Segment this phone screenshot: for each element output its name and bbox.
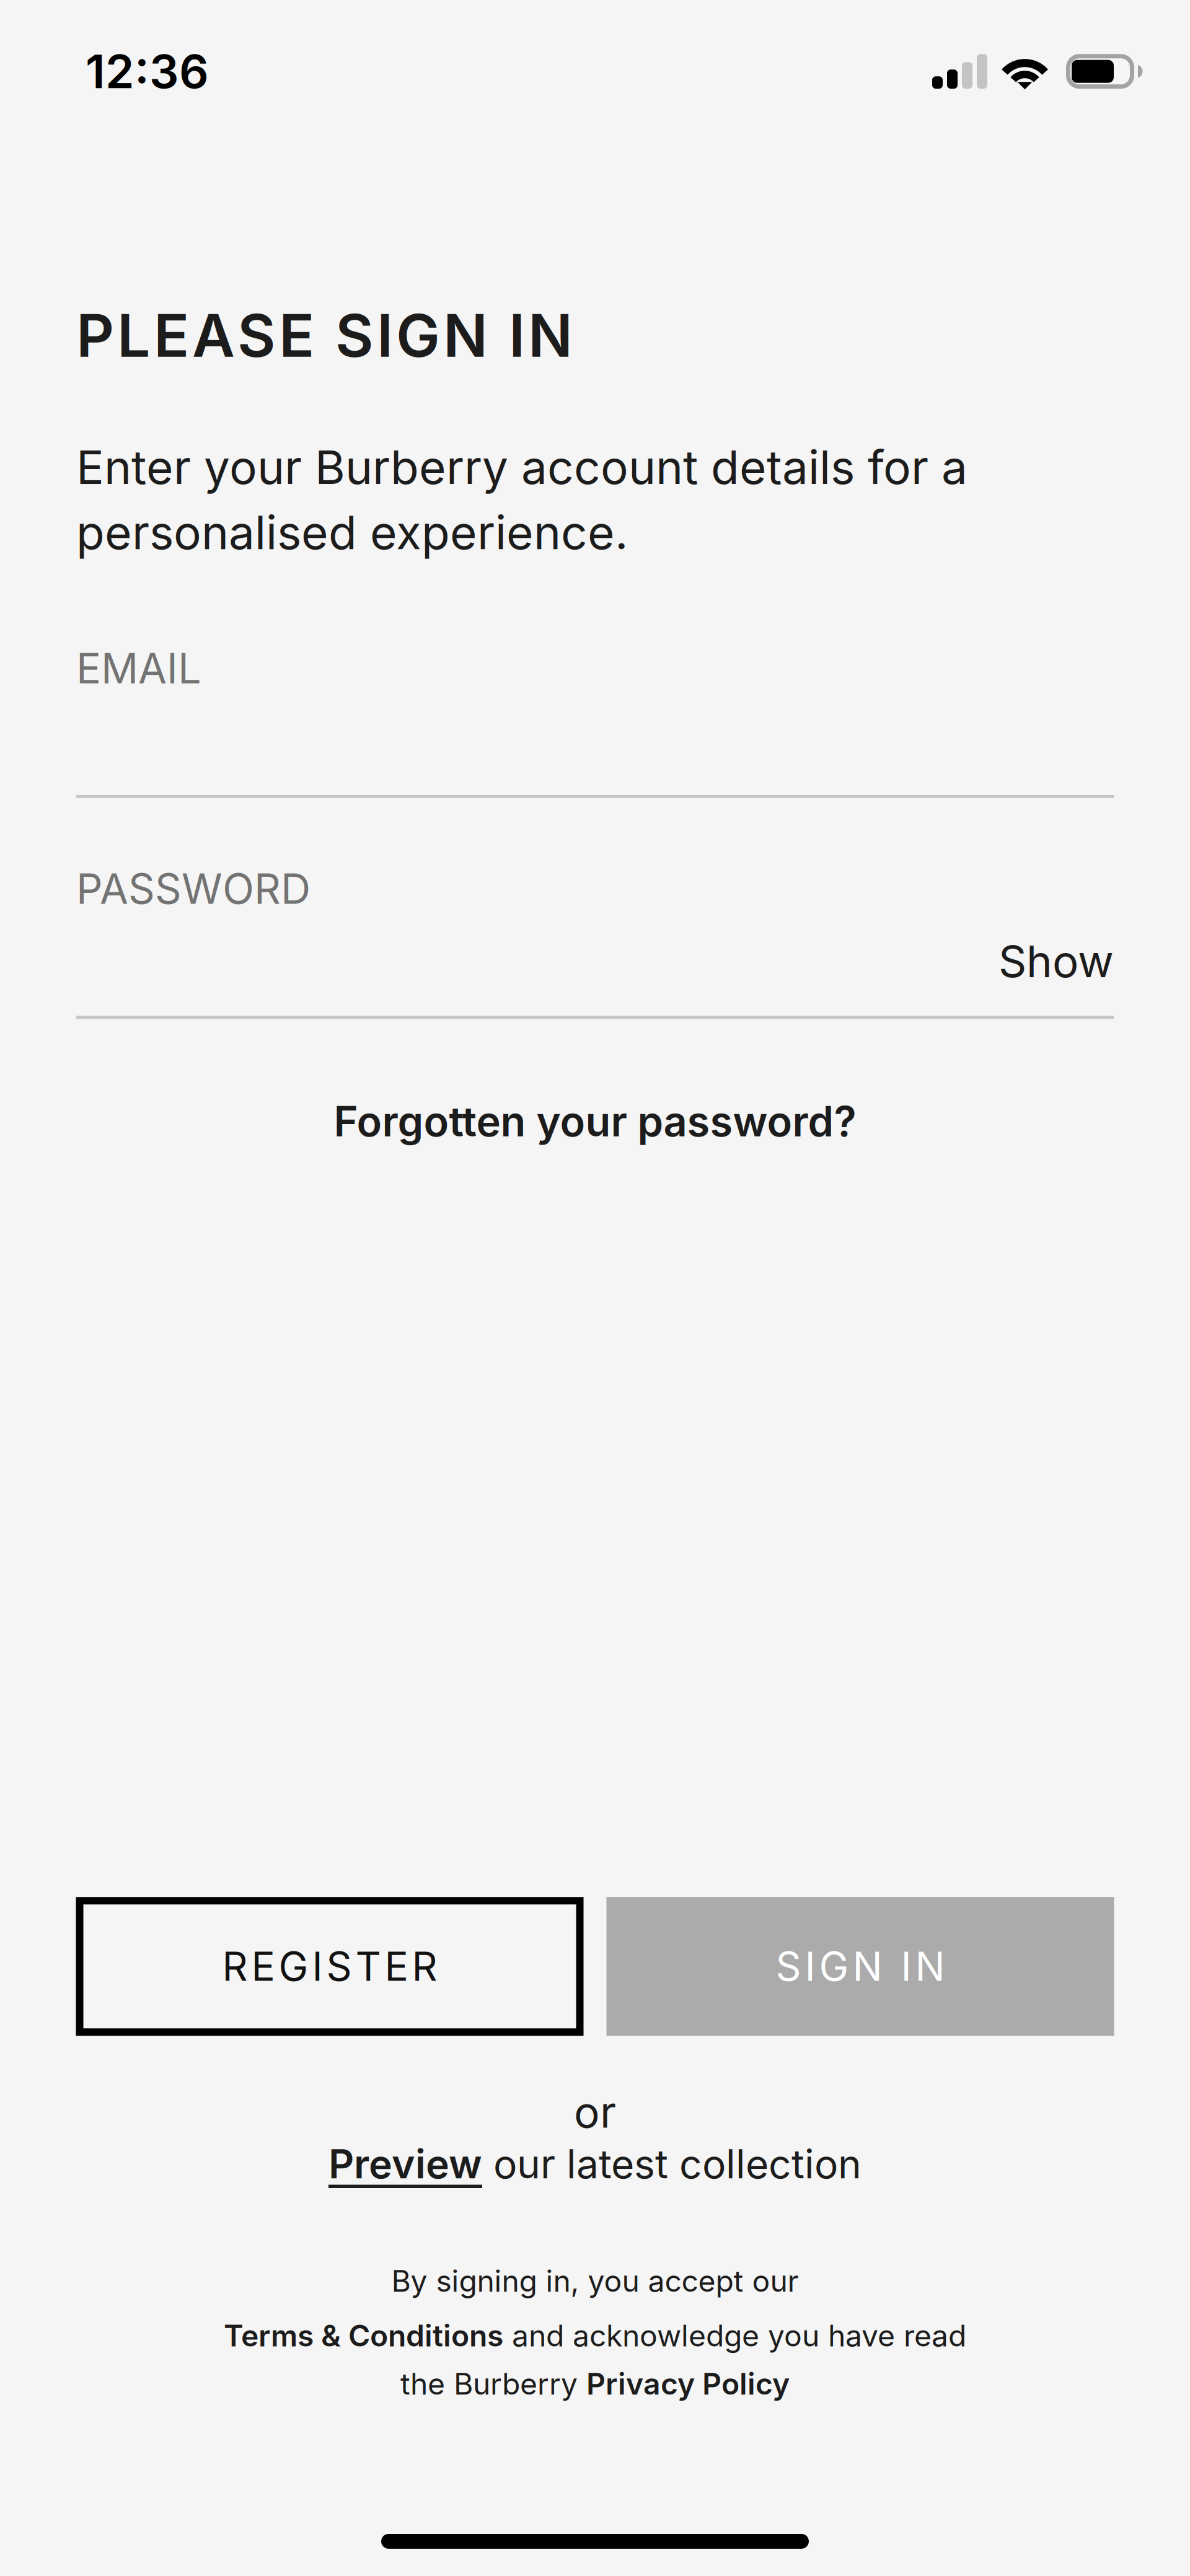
staticText: 12:36 [86, 43, 209, 99]
staticText: R E G I S T E R [222, 1942, 437, 1990]
staticText: or [574, 2086, 616, 2138]
staticText: the Burberry Privacy Policy [400, 2366, 790, 2401]
button[interactable]: S I G N I N [606, 1897, 1114, 2036]
staticText: Show [998, 935, 1114, 988]
staticText: Forgotten your password? [334, 1096, 856, 1146]
staticText: S I G N I N [776, 1942, 945, 1990]
button[interactable]: Forgotten your password? [76, 1096, 1114, 1146]
button[interactable]: Show [998, 935, 1114, 988]
staticText: PASSWORD [76, 864, 311, 914]
button[interactable]: the Burberry Privacy Policy [400, 2366, 790, 2401]
staticText: EMAIL [76, 643, 201, 693]
button[interactable]: Preview our latest collection [328, 2140, 862, 2187]
button[interactable]: Terms & Conditions and acknowledge you h… [224, 2318, 966, 2353]
staticText: Enter your Burberry account details for … [76, 439, 967, 560]
staticText: PLEASE SIGN IN [76, 300, 573, 371]
staticText: By signing in, you accept our [391, 2263, 799, 2299]
staticText: Preview our latest collection [328, 2140, 862, 2187]
staticText: Terms & Conditions and acknowledge you h… [224, 2318, 966, 2353]
button[interactable]: R E G I S T E R [76, 1897, 584, 2036]
